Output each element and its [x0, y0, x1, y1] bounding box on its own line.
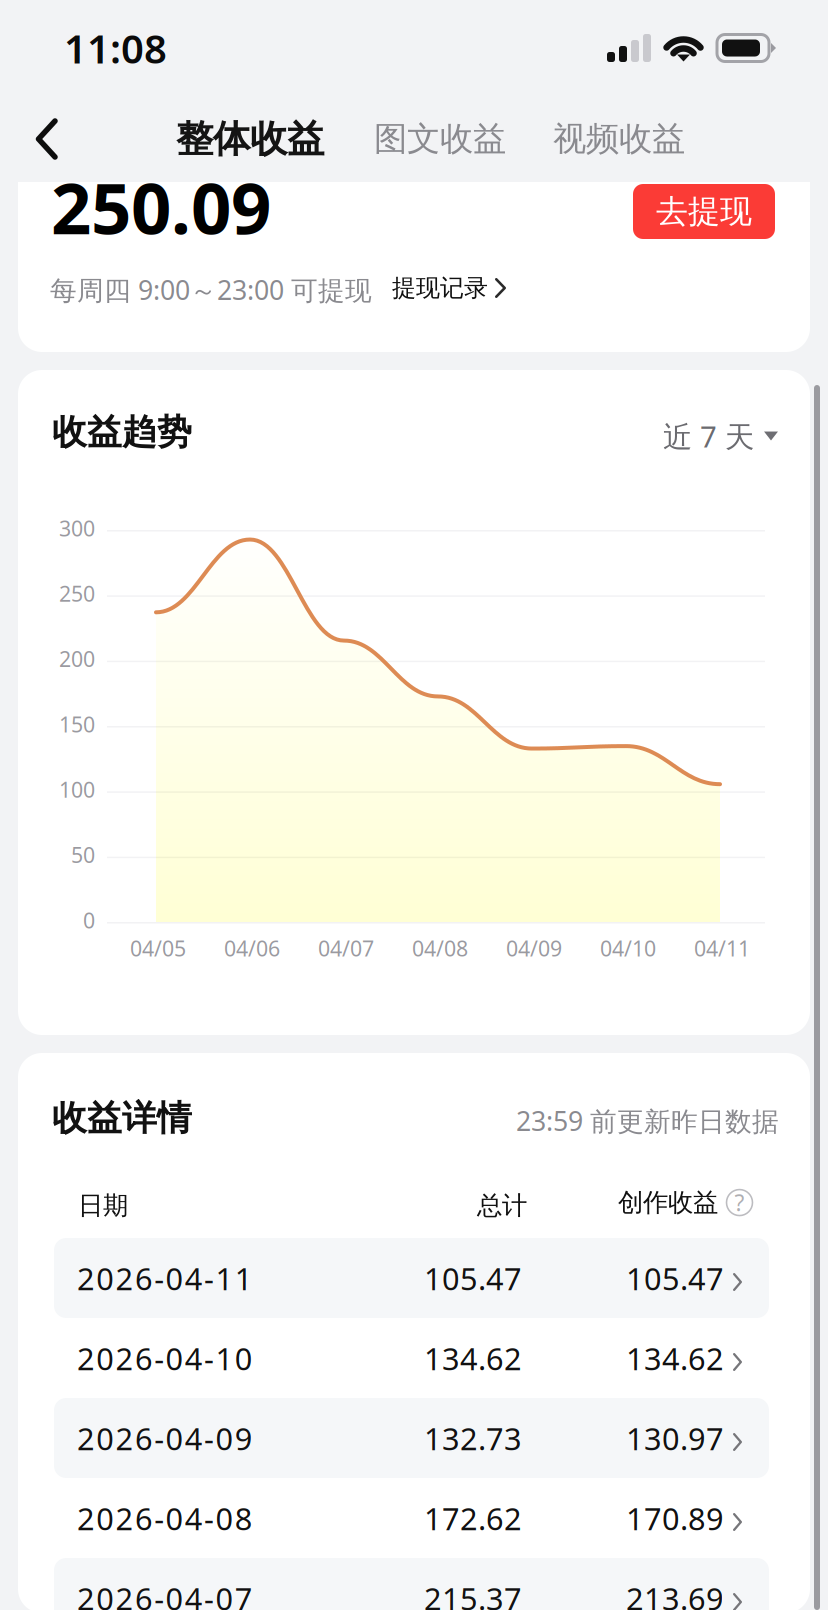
staticText: 04/05: [130, 934, 186, 962]
staticText: 300: [59, 514, 95, 542]
staticText: 105.47: [626, 1258, 724, 1299]
staticText: 视频收益: [553, 118, 685, 159]
staticText: 04/07: [318, 934, 374, 962]
button[interactable]: 近 7 天: [663, 415, 778, 457]
staticText: 105.47: [424, 1258, 522, 1299]
button[interactable]: 提现记录: [392, 268, 506, 308]
staticText: 134.62: [424, 1338, 522, 1379]
staticText: 200: [59, 645, 95, 673]
staticText: 250.09: [51, 160, 271, 254]
staticText: 130.97: [626, 1418, 724, 1459]
staticText: 2026-04-11: [77, 1258, 253, 1299]
staticText: 150: [59, 710, 95, 738]
staticText: 04/10: [600, 934, 656, 962]
staticText: 收益详情: [52, 1097, 192, 1140]
staticText: 总计: [477, 1190, 527, 1221]
staticText: 250: [59, 579, 95, 608]
button[interactable]: 2026-04-10: [18, 1318, 810, 1398]
button[interactable]: 视频收益: [537, 96, 701, 182]
button[interactable]: 图文收益: [358, 96, 522, 182]
staticText: 04/09: [506, 934, 562, 962]
staticText: 2026-04-09: [77, 1418, 253, 1459]
staticText: ?: [734, 1187, 744, 1218]
staticText: 213.69: [626, 1578, 724, 1610]
staticText: 日期: [78, 1190, 128, 1221]
staticText: 170.89: [626, 1498, 724, 1539]
button[interactable]: Back: [8, 96, 86, 182]
staticText: 100: [59, 775, 95, 804]
staticText: 132.73: [424, 1418, 522, 1459]
button[interactable]: 2026-04-08: [18, 1478, 810, 1558]
staticText: 近 7 天: [663, 416, 754, 455]
staticText: 2026-04-08: [77, 1498, 253, 1539]
staticText: 图文收益: [374, 118, 506, 159]
staticText: 11:08: [64, 21, 167, 74]
staticText: 23:59 前更新昨日数据: [516, 1103, 779, 1138]
staticText: 04/11: [694, 934, 750, 962]
staticText: 去提现: [656, 192, 752, 231]
staticText: 04/06: [224, 934, 280, 962]
button[interactable]: 2026-04-11: [18, 1238, 810, 1318]
button[interactable]: 去提现: [633, 184, 775, 239]
staticText: 215.37: [424, 1578, 522, 1610]
staticText: 2026-04-10: [77, 1338, 253, 1379]
button[interactable]: 2026-04-07: [18, 1558, 810, 1610]
staticText: 提现记录: [392, 273, 488, 303]
staticText: 50: [71, 841, 95, 869]
staticText: 每周四 9:00～23:00 可提现: [50, 272, 372, 307]
staticText: 收益趋势: [52, 411, 192, 454]
staticText: 0: [83, 906, 95, 934]
staticText: 134.62: [626, 1338, 724, 1379]
button[interactable]: 2026-04-09: [18, 1398, 810, 1478]
staticText: 2026-04-07: [77, 1578, 253, 1610]
staticText: 172.62: [424, 1498, 522, 1539]
staticText: 整体收益: [176, 116, 324, 162]
staticText: 创作收益: [618, 1187, 718, 1218]
button[interactable]: 整体收益: [162, 96, 338, 182]
staticText: 04/08: [412, 934, 468, 962]
